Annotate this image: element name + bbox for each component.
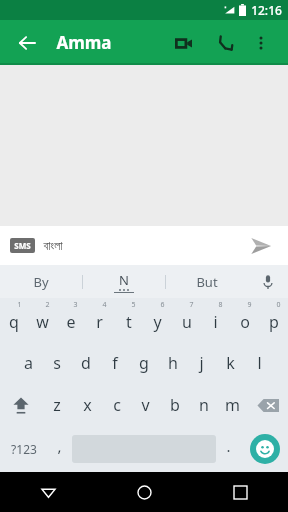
button[interactable]: s <box>42 342 71 384</box>
staticText: 8 <box>218 300 223 310</box>
button[interactable]: N <box>83 265 165 298</box>
button[interactable]: 0 <box>259 298 288 342</box>
button[interactable]: 8 <box>201 298 230 342</box>
button[interactable]: g <box>129 342 158 384</box>
staticText: SMS <box>14 240 31 251</box>
button[interactable]: m <box>218 384 247 426</box>
staticText: p <box>269 311 279 333</box>
button[interactable]: 1 <box>0 298 28 342</box>
staticText: ?123 <box>11 441 37 457</box>
staticText: l <box>257 352 262 374</box>
staticText: u <box>182 311 192 333</box>
button[interactable]: k <box>216 342 245 384</box>
button[interactable]: , <box>47 426 72 472</box>
button[interactable]: f <box>100 342 129 384</box>
button[interactable]: d <box>71 342 100 384</box>
staticText: 6 <box>160 300 165 310</box>
staticText: n <box>199 394 209 416</box>
button[interactable]: But <box>166 265 248 298</box>
button[interactable]: 4 <box>85 298 114 342</box>
button[interactable]: c <box>102 384 131 426</box>
staticText: e <box>66 311 76 333</box>
staticText: a <box>24 352 33 374</box>
button[interactable]: SMS <box>14 240 31 251</box>
button[interactable]: j <box>187 342 216 384</box>
button[interactable]: a <box>14 342 42 384</box>
staticText: 7 <box>189 300 194 310</box>
staticText: 1 <box>17 300 22 310</box>
button[interactable]: More options <box>246 28 276 58</box>
button[interactable]: 9 <box>230 298 259 342</box>
staticText: z <box>53 394 61 416</box>
button[interactable]: Emoji <box>241 426 288 472</box>
button[interactable]: v <box>131 384 160 426</box>
staticText: d <box>81 352 91 374</box>
button[interactable]: By <box>0 265 82 298</box>
button[interactable]: l <box>245 342 274 384</box>
staticText: g <box>139 352 149 374</box>
button[interactable]: Recent apps <box>192 472 288 512</box>
staticText: But <box>196 273 218 291</box>
button[interactable]: 7 <box>172 298 201 342</box>
button[interactable]: . <box>216 426 241 472</box>
button[interactable]: Back <box>0 472 96 512</box>
button[interactable]: Shift <box>0 384 42 426</box>
button[interactable]: b <box>160 384 189 426</box>
button[interactable]: h <box>158 342 187 384</box>
staticText: . <box>226 436 231 456</box>
staticText: v <box>141 394 150 416</box>
staticText: 0 <box>276 300 281 310</box>
staticText: Amma <box>56 31 112 54</box>
button[interactable]: Backspace <box>247 384 288 426</box>
staticText: m <box>225 394 240 416</box>
staticText: বাংলা <box>43 240 63 252</box>
staticText: t <box>126 311 132 333</box>
button[interactable]: Send <box>244 229 278 263</box>
button[interactable]: z <box>42 384 72 426</box>
button[interactable]: Call <box>208 26 242 60</box>
button[interactable]: Video call <box>166 26 200 60</box>
staticText: q <box>9 311 19 333</box>
button[interactable]: Home <box>96 472 192 512</box>
button[interactable]: Back <box>12 28 42 58</box>
staticText: r <box>96 311 103 333</box>
button[interactable]: Voice input <box>248 265 288 298</box>
staticText: 3 <box>73 300 78 310</box>
staticText: 2 <box>45 300 50 310</box>
staticText: , <box>57 436 62 456</box>
staticText: y <box>153 311 162 333</box>
staticText: k <box>226 352 235 374</box>
staticText: 12:16 <box>251 2 282 18</box>
staticText: h <box>168 352 178 374</box>
button[interactable]: n <box>189 384 218 426</box>
staticText: N <box>119 271 129 289</box>
staticText: s <box>53 352 61 374</box>
button[interactable]: 2 <box>28 298 56 342</box>
staticText: f <box>112 352 118 374</box>
staticText: 9 <box>247 300 252 310</box>
staticText: 5 <box>131 300 136 310</box>
staticText: b <box>170 394 180 416</box>
staticText: w <box>36 311 49 333</box>
staticText: 4 <box>102 300 107 310</box>
button[interactable]: 5 <box>114 298 143 342</box>
staticText: c <box>113 394 121 416</box>
staticText: By <box>33 273 49 291</box>
button[interactable]: 3 <box>56 298 85 342</box>
button[interactable]: ?123 <box>0 426 47 472</box>
button[interactable]: x <box>72 384 102 426</box>
staticText: o <box>240 311 250 333</box>
staticText: j <box>199 352 204 374</box>
button[interactable]: 6 <box>143 298 172 342</box>
staticText: i <box>213 311 218 333</box>
staticText: x <box>83 394 92 416</box>
